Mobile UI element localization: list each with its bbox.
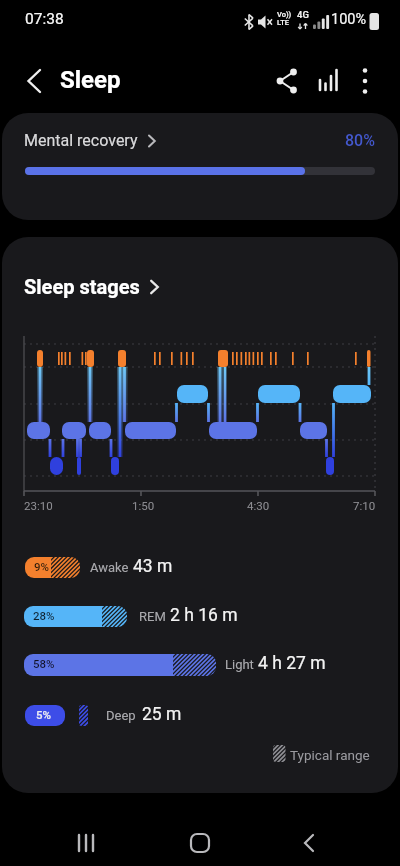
staticText: 9% [34, 560, 49, 573]
button[interactable] [269, 63, 305, 99]
button[interactable] [309, 63, 345, 99]
staticText: 43 m [133, 556, 173, 577]
staticText: Deep [106, 708, 136, 723]
button[interactable] [347, 63, 383, 99]
button[interactable]: Sleep stages [24, 275, 159, 298]
button[interactable] [287, 821, 331, 865]
staticText: 4G [297, 9, 309, 20]
staticText: Awake [90, 560, 129, 575]
staticText: Vo)) [277, 10, 292, 19]
staticText: Light [225, 657, 254, 672]
staticText: Sleep [60, 66, 121, 94]
button[interactable] [65, 821, 109, 865]
button[interactable] [2, 113, 398, 220]
staticText: REM [139, 609, 166, 624]
staticText: 7:10 [353, 499, 376, 512]
staticText: Mental recovery [24, 131, 138, 150]
button[interactable] [18, 63, 54, 99]
staticText: 1:50 [132, 499, 155, 512]
staticText: Typical range [290, 747, 370, 763]
staticText: Sleep stages [24, 275, 140, 298]
staticText: 23:10 [24, 499, 53, 512]
staticText: 4:30 [247, 499, 270, 512]
staticText: 5% [36, 708, 51, 721]
button[interactable]: Mental recovery [24, 131, 156, 150]
staticText: 07:38 [25, 10, 64, 28]
staticText: 4 h 27 m [258, 653, 326, 674]
staticText: LTE [277, 18, 290, 27]
staticText: 2 h 16 m [170, 605, 238, 626]
staticText: 80% [345, 131, 375, 150]
staticText: 100% [331, 11, 367, 28]
button[interactable] [178, 821, 222, 865]
staticText: 58% [33, 657, 55, 670]
staticText: 25 m [142, 704, 182, 725]
staticText: 28% [33, 609, 55, 622]
